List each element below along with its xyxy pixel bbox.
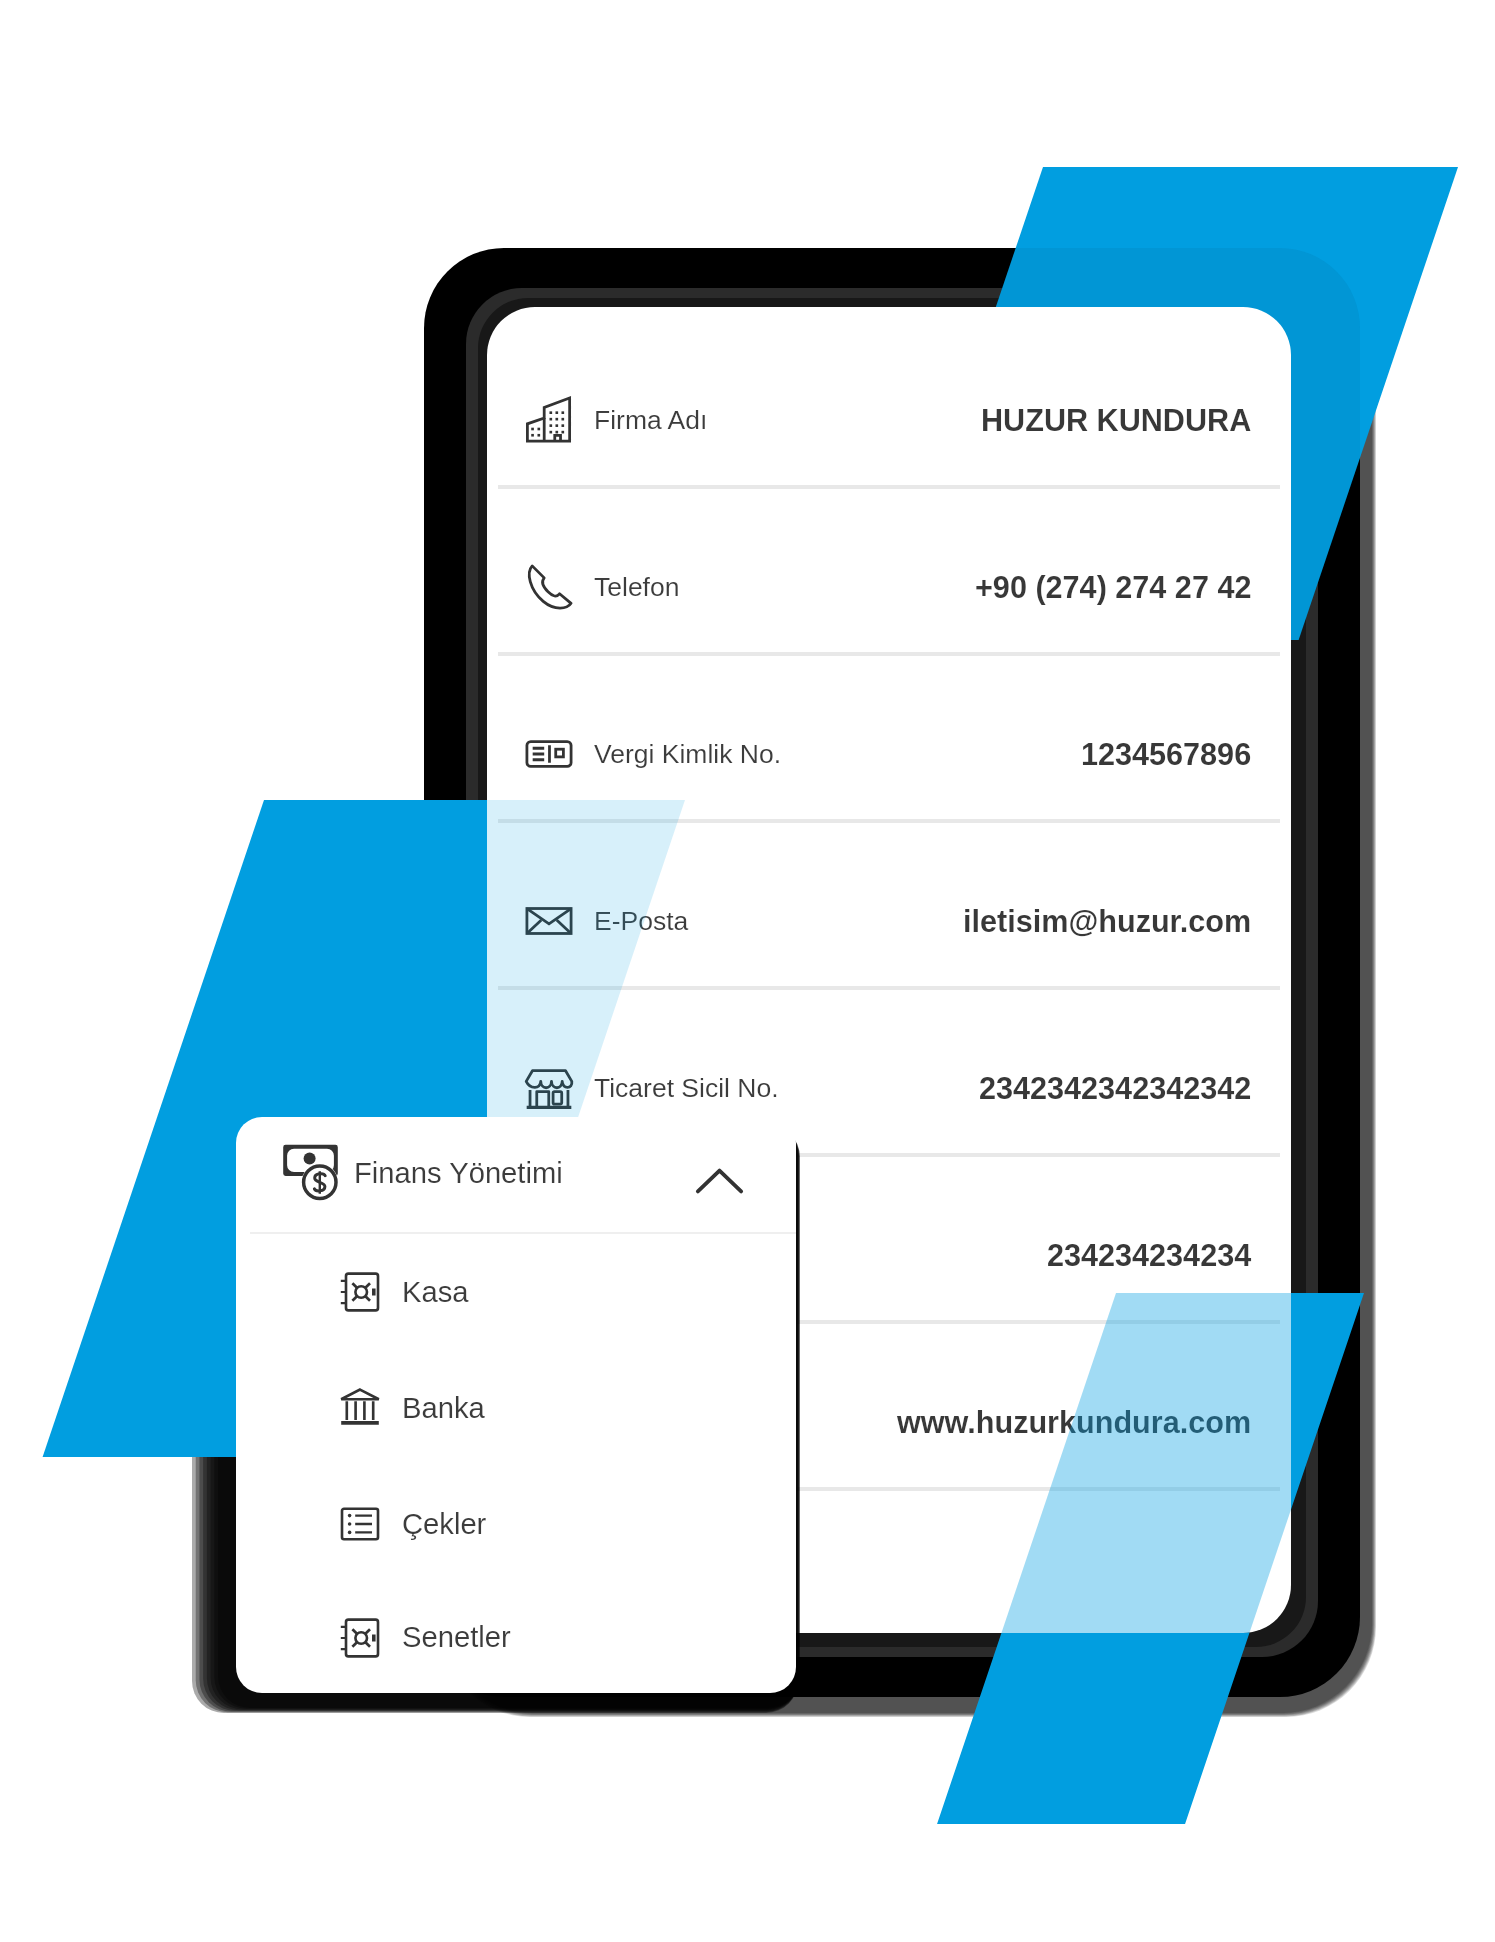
button[interactable]: Kasa bbox=[236, 1234, 796, 1350]
staticText: Ticaret Sicil No. bbox=[594, 1073, 779, 1103]
button[interactable]: Çekler bbox=[236, 1466, 796, 1582]
staticText: 1234567896 bbox=[1081, 737, 1252, 771]
staticText: Senetler bbox=[402, 1621, 511, 1654]
staticText: E-Posta bbox=[594, 906, 689, 936]
button[interactable]: Mersis No. bbox=[487, 1157, 1291, 1324]
staticText: Banka bbox=[402, 1392, 485, 1425]
button[interactable]: Telefon bbox=[487, 489, 1291, 656]
button[interactable]: Web Sitesi bbox=[487, 1324, 1291, 1491]
button[interactable]: Ticaret Sicil No. bbox=[487, 990, 1291, 1157]
staticText: +90 (274) 274 27 42 bbox=[975, 570, 1252, 604]
button[interactable]: Vergi Kimlik No. bbox=[487, 656, 1291, 823]
button[interactable]: Finans Yönetimi bbox=[236, 1117, 796, 1234]
staticText: Kasa bbox=[402, 1276, 469, 1309]
button[interactable]: Firma Adı bbox=[487, 322, 1291, 489]
staticText: HUZUR KUNDURA bbox=[981, 403, 1252, 437]
staticText: Telefon bbox=[594, 572, 680, 602]
staticText: 2342342342342342 bbox=[979, 1071, 1252, 1105]
button[interactable]: E-Posta bbox=[487, 823, 1291, 990]
staticText: Finans Yönetimi bbox=[354, 1157, 563, 1190]
staticText: iletisim@huzur.com bbox=[963, 904, 1252, 938]
staticText: Çekler bbox=[402, 1508, 487, 1541]
staticText: www.huzurkundura.com bbox=[897, 1405, 1252, 1439]
staticText: Vergi Kimlik No. bbox=[594, 739, 782, 769]
button[interactable]: Senetler bbox=[236, 1582, 796, 1693]
other: Collapse Finans Yönetimi bbox=[696, 1168, 743, 1194]
staticText: Firma Adı bbox=[594, 405, 708, 435]
staticText: 234234234234 bbox=[1047, 1238, 1252, 1272]
button[interactable]: Banka bbox=[236, 1350, 796, 1466]
